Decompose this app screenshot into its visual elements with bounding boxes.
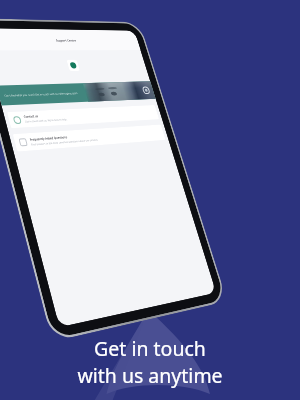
staticText: Can't find what you need? Get in touch w… bbox=[4, 91, 78, 98]
staticText: Contact us bbox=[23, 114, 39, 119]
button[interactable]: Contact us bbox=[7, 105, 159, 128]
button[interactable]: Can't find what you need? Get in touch w… bbox=[0, 81, 156, 105]
staticText: Get in touch with us. We're here to help… bbox=[24, 117, 68, 123]
button[interactable]: Frequently Asked Questions bbox=[13, 124, 166, 152]
staticText: Frequently Asked Questions bbox=[29, 135, 68, 142]
button[interactable]: Close banner bbox=[142, 86, 151, 94]
staticText: with us anytime bbox=[77, 362, 223, 389]
staticText: Get in touch bbox=[94, 335, 206, 362]
staticText: Find answers to the most common question… bbox=[31, 138, 98, 147]
staticText: Support Centre bbox=[55, 38, 77, 42]
